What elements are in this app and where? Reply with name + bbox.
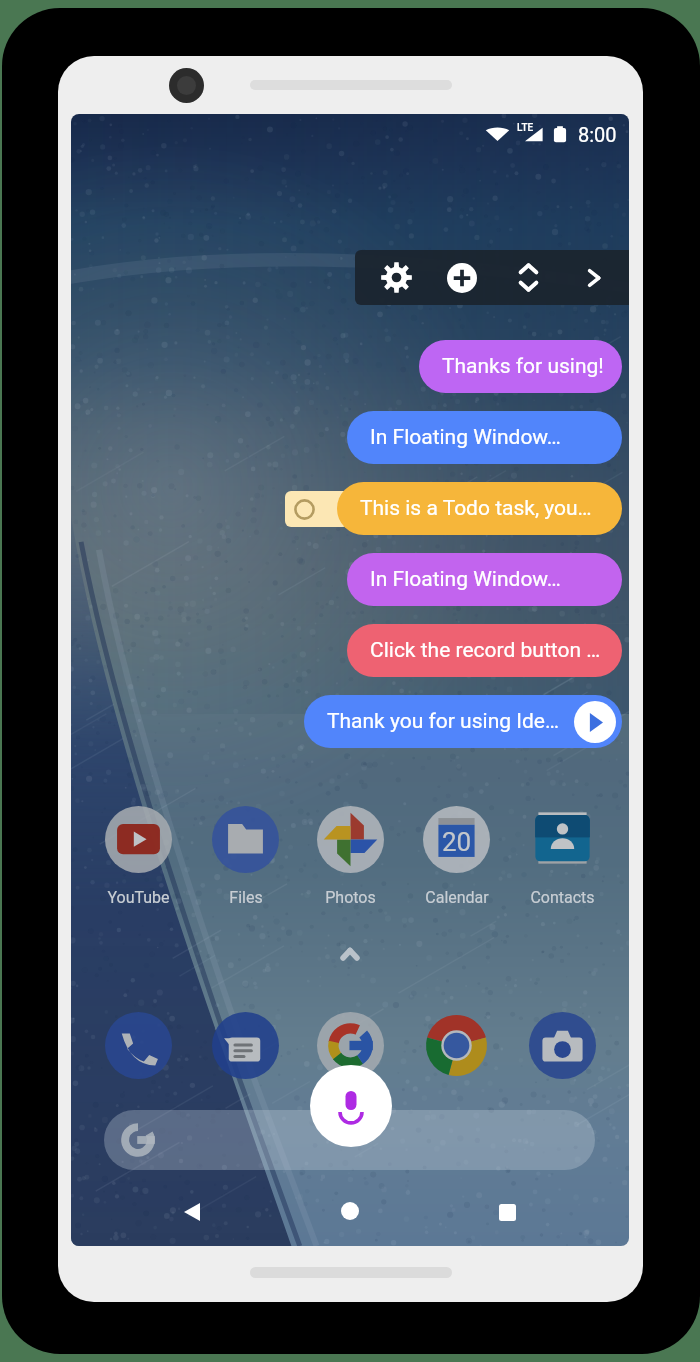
button[interactable]: Phone	[105, 1012, 172, 1079]
button[interactable]: Expand	[501, 250, 555, 305]
staticText: Photos	[325, 888, 376, 907]
staticText: 8:00	[578, 123, 617, 146]
staticText: Files	[229, 888, 263, 907]
button[interactable]: Thank you for using Ide…	[304, 695, 622, 748]
staticText: Thank you for using Ide…	[327, 709, 559, 734]
staticText: LTE	[517, 122, 534, 134]
button[interactable]: Recent apps	[485, 1190, 529, 1234]
staticText: In Floating Window…	[370, 567, 561, 592]
button[interactable]: Play	[574, 701, 616, 743]
button[interactable]: Voice search	[310, 1065, 392, 1147]
button[interactable]: 20	[403, 806, 509, 914]
button[interactable]: Contacts	[509, 806, 615, 914]
button[interactable]: Chrome	[423, 1012, 490, 1079]
button[interactable]: Add	[435, 250, 489, 305]
button[interactable]: This is a Todo task, you…	[337, 482, 622, 535]
button[interactable]: Todo checkbox	[285, 491, 349, 527]
button[interactable]	[104, 1110, 595, 1170]
button[interactable]: In Floating Window…	[347, 553, 622, 606]
button[interactable]: Messages	[212, 1012, 279, 1079]
button[interactable]: Settings	[369, 250, 423, 305]
button[interactable]: YouTube	[85, 806, 191, 914]
staticText: Click the record button …	[370, 638, 601, 663]
button[interactable]: Thanks for using!	[419, 340, 622, 393]
button[interactable]: In Floating Window…	[347, 411, 622, 464]
button[interactable]: Google	[317, 1012, 384, 1079]
button[interactable]: Collapse	[567, 250, 621, 305]
staticText: Thanks for using!	[442, 354, 603, 379]
button[interactable]: Files	[192, 806, 298, 914]
staticText: In Floating Window…	[370, 425, 561, 450]
staticText: 20	[442, 827, 472, 857]
button[interactable]: Camera	[529, 1012, 596, 1079]
button[interactable]: Click the record button …	[347, 624, 622, 677]
staticText: YouTube	[107, 888, 170, 907]
button[interactable]: Back	[170, 1190, 214, 1234]
staticText: Contacts	[530, 888, 595, 907]
button[interactable]: Home	[328, 1189, 372, 1233]
staticText: This is a Todo task, you…	[360, 496, 592, 521]
button[interactable]: Photos	[297, 806, 403, 914]
staticText: Calendar	[425, 888, 489, 907]
